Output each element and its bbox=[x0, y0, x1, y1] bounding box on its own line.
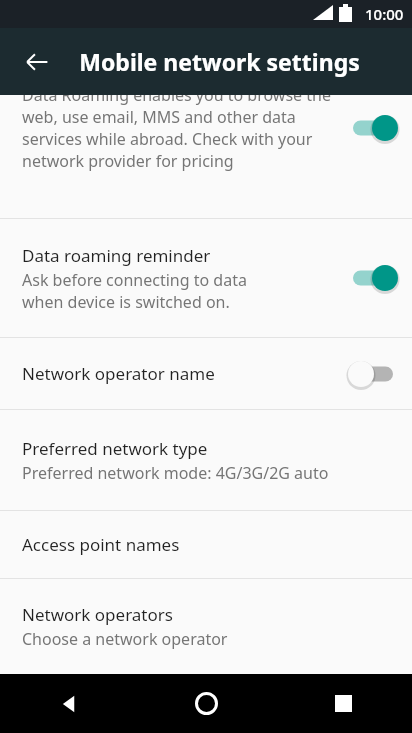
button[interactable]: Navigate up bbox=[13, 38, 61, 86]
button[interactable]: Network operator name bbox=[0, 338, 412, 409]
button[interactable]: Off bbox=[342, 354, 404, 394]
button[interactable]: Access point names bbox=[0, 511, 412, 578]
button[interactable]: Preferred network type bbox=[0, 410, 412, 510]
button[interactable]: On bbox=[342, 108, 404, 148]
staticText: Data Roaming enables you to browse the w… bbox=[22, 95, 334, 172]
staticText: Network operator name bbox=[22, 362, 215, 385]
staticText: Preferred network type bbox=[22, 437, 208, 460]
staticText: Ask before connecting to data when devic… bbox=[22, 269, 247, 313]
button[interactable]: Data roaming reminder bbox=[0, 219, 412, 337]
staticText: 10:00 bbox=[365, 4, 404, 24]
staticText: Preferred network mode: 4G/3G/2G auto bbox=[22, 462, 329, 484]
button[interactable]: Data Roaming enables you to browse the w… bbox=[0, 95, 412, 218]
button[interactable]: On bbox=[342, 258, 404, 298]
button[interactable]: Network operators bbox=[0, 579, 412, 674]
staticText: Network operators bbox=[22, 603, 173, 626]
staticText: Mobile network settings bbox=[79, 46, 360, 77]
button[interactable]: Back bbox=[0, 674, 138, 733]
button[interactable]: Home bbox=[138, 674, 275, 733]
button[interactable]: Recent apps bbox=[275, 674, 412, 733]
staticText: Data roaming reminder bbox=[22, 244, 211, 267]
staticText: Access point names bbox=[22, 533, 180, 556]
staticText: Choose a network operator bbox=[22, 628, 228, 650]
